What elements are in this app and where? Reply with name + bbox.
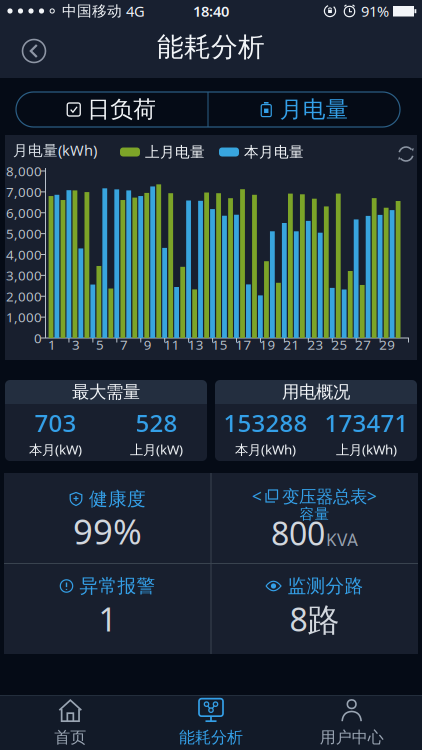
staticText: 528	[135, 407, 177, 439]
staticText: 21	[283, 336, 299, 353]
staticText: 能耗分析	[179, 728, 243, 747]
staticText: 23	[307, 336, 323, 353]
button[interactable]: 首页	[0, 695, 141, 750]
staticText: 8路	[289, 598, 339, 640]
staticText: 9	[144, 336, 152, 353]
staticText: 异常报警	[79, 574, 155, 597]
staticText: 上月(kW)	[130, 441, 183, 458]
button[interactable]: Back	[20, 37, 48, 65]
staticText: 1,000	[6, 308, 42, 326]
staticText: 7,000	[6, 183, 42, 201]
staticText: 99%	[73, 508, 142, 554]
staticText: 15	[212, 336, 228, 353]
staticText: 4G	[126, 1, 145, 21]
staticText: 能耗分析	[157, 31, 265, 63]
staticText: 上月电量	[145, 143, 205, 161]
button[interactable]: 刷新	[397, 145, 415, 163]
staticText: 监测分路	[287, 574, 363, 597]
button[interactable]: 月电量	[208, 92, 400, 127]
staticText: 153288	[223, 407, 307, 439]
staticText: 173471	[324, 407, 408, 439]
staticText: 11	[164, 336, 180, 353]
staticText: <	[252, 484, 262, 507]
button[interactable]: 能耗分析	[141, 695, 281, 750]
staticText: 变压器总表>	[282, 484, 377, 507]
staticText: 5	[96, 336, 104, 353]
staticText: 月电量	[280, 96, 349, 123]
staticText: 最大需量	[72, 381, 140, 403]
staticText: 本月电量	[244, 143, 304, 161]
staticText: 健康度	[89, 487, 146, 510]
staticText: 本月(kWh)	[235, 441, 296, 458]
staticText: 3	[72, 336, 80, 353]
staticText: 4,000	[6, 246, 42, 263]
staticText: 1	[48, 336, 56, 353]
staticText: 13	[188, 336, 204, 353]
button[interactable]: 用户中心	[281, 695, 422, 750]
staticText: 6,000	[6, 204, 42, 222]
staticText: 703	[34, 407, 76, 439]
staticText: 29	[379, 336, 395, 353]
staticText: 首页	[54, 728, 86, 747]
staticText: 5,000	[6, 225, 42, 242]
staticText: 17	[236, 336, 252, 353]
staticText: 中国移动	[62, 2, 122, 20]
staticText: 容量	[299, 505, 329, 523]
staticText: 19	[260, 336, 276, 353]
staticText: 18:40	[193, 1, 229, 21]
staticText: 27	[355, 336, 371, 353]
staticText: 1	[98, 598, 116, 640]
staticText: 用电概况	[282, 381, 350, 403]
staticText: 800	[271, 512, 325, 554]
button[interactable]: 日负荷	[16, 92, 207, 127]
staticText: 0	[34, 329, 42, 347]
staticText: 日负荷	[87, 96, 156, 123]
staticText: 本月(kW)	[29, 441, 82, 458]
staticText: 7	[120, 336, 128, 353]
staticText: 25	[331, 336, 347, 353]
staticText: 8,000	[6, 162, 42, 180]
staticText: 91%	[361, 1, 389, 21]
staticText: KVA	[326, 528, 358, 551]
staticText: 3,000	[6, 266, 42, 284]
staticText: 用户中心	[320, 728, 384, 747]
staticText: 上月(kWh)	[336, 441, 397, 458]
staticText: 月电量(kWh)	[13, 140, 97, 160]
staticText: 2,000	[6, 287, 42, 305]
